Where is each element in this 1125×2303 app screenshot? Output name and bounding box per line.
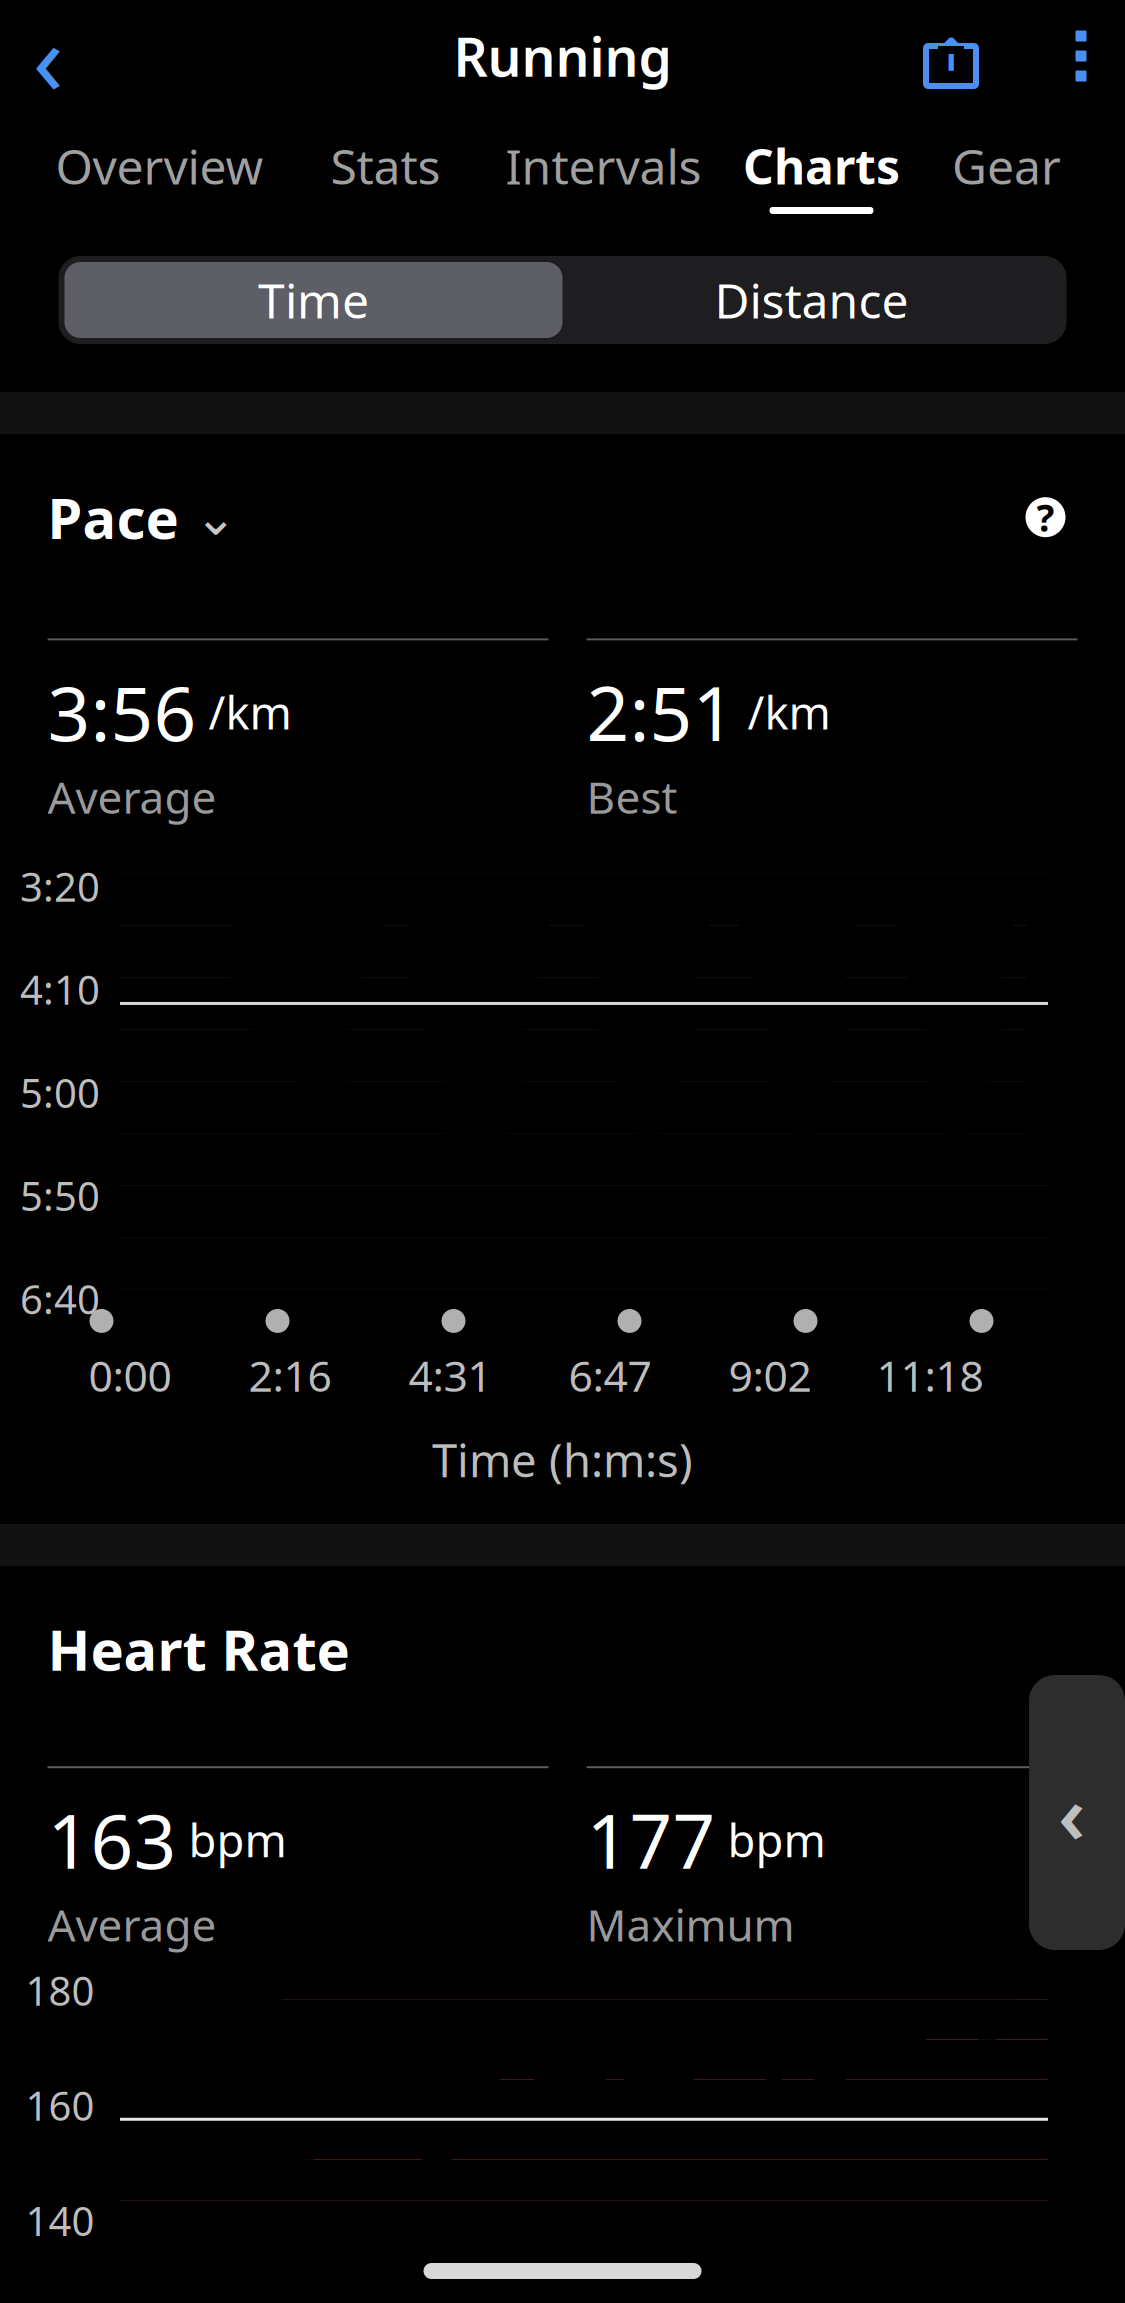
- staticText: 6:40: [20, 1272, 100, 1325]
- button[interactable]: Share: [903, 8, 999, 104]
- staticText: Distance: [714, 268, 908, 332]
- button[interactable]: Back: [0, 8, 96, 104]
- staticText: /km: [747, 682, 830, 742]
- staticText: Running: [453, 21, 671, 91]
- staticText: 5:50: [20, 1169, 100, 1222]
- staticText: ‹: [32, 0, 63, 123]
- staticText: Heart Rate: [47, 1612, 349, 1686]
- staticText: ?: [1036, 492, 1054, 542]
- staticText: Charts: [743, 134, 900, 198]
- staticText: Overview: [55, 134, 263, 198]
- staticText: Intervals: [505, 134, 701, 198]
- staticText: 4:31: [408, 1347, 491, 1404]
- staticText: 160: [25, 2079, 94, 2132]
- button[interactable]: Time: [64, 262, 562, 338]
- staticText: 9:02: [728, 1347, 811, 1404]
- button[interactable]: Overview: [28, 112, 290, 230]
- button[interactable]: Intervals: [480, 112, 726, 230]
- staticText: Average: [47, 1895, 216, 1954]
- staticText: 6:47: [568, 1347, 651, 1404]
- staticText: 2:16: [248, 1347, 331, 1404]
- staticText: 3:56: [47, 662, 196, 762]
- staticText: 140: [25, 2194, 94, 2247]
- button[interactable]: More options: [1037, 8, 1125, 104]
- staticText: bpm: [188, 1810, 286, 1870]
- button[interactable]: Open side panel: [1029, 1675, 1125, 1950]
- button[interactable]: Stats: [290, 112, 480, 230]
- staticText: 177: [586, 1790, 715, 1889]
- staticText: 11:18: [876, 1347, 983, 1404]
- staticText: Best: [586, 767, 677, 826]
- staticText: 5:00: [20, 1066, 100, 1119]
- button[interactable]: Charts: [726, 112, 916, 230]
- staticText: /km: [208, 682, 291, 742]
- staticText: Time: [258, 268, 369, 332]
- staticText: Time (h:m:s): [432, 1430, 693, 1490]
- staticText: ⌄: [194, 488, 236, 546]
- button[interactable]: Pace: [47, 470, 236, 564]
- staticText: Average: [47, 767, 216, 826]
- staticText: bpm: [727, 1810, 825, 1870]
- staticText: 3:20: [20, 860, 100, 913]
- staticText: Maximum: [586, 1895, 794, 1954]
- button[interactable]: Help about pace chart: [1013, 485, 1077, 549]
- staticText: 0:00: [88, 1347, 171, 1404]
- staticText: 4:10: [20, 963, 100, 1016]
- button[interactable]: Gear: [916, 112, 1096, 230]
- staticText: 2:51: [586, 662, 735, 762]
- button[interactable]: Distance: [562, 262, 1060, 338]
- staticText: 180: [25, 1964, 94, 2017]
- staticText: 163: [47, 1790, 176, 1889]
- staticText: ↑: [932, 29, 970, 81]
- staticText: ‹: [1058, 1759, 1086, 1866]
- staticText: Pace: [47, 480, 178, 554]
- staticText: Stats: [330, 134, 440, 198]
- staticText: Gear: [952, 134, 1061, 198]
